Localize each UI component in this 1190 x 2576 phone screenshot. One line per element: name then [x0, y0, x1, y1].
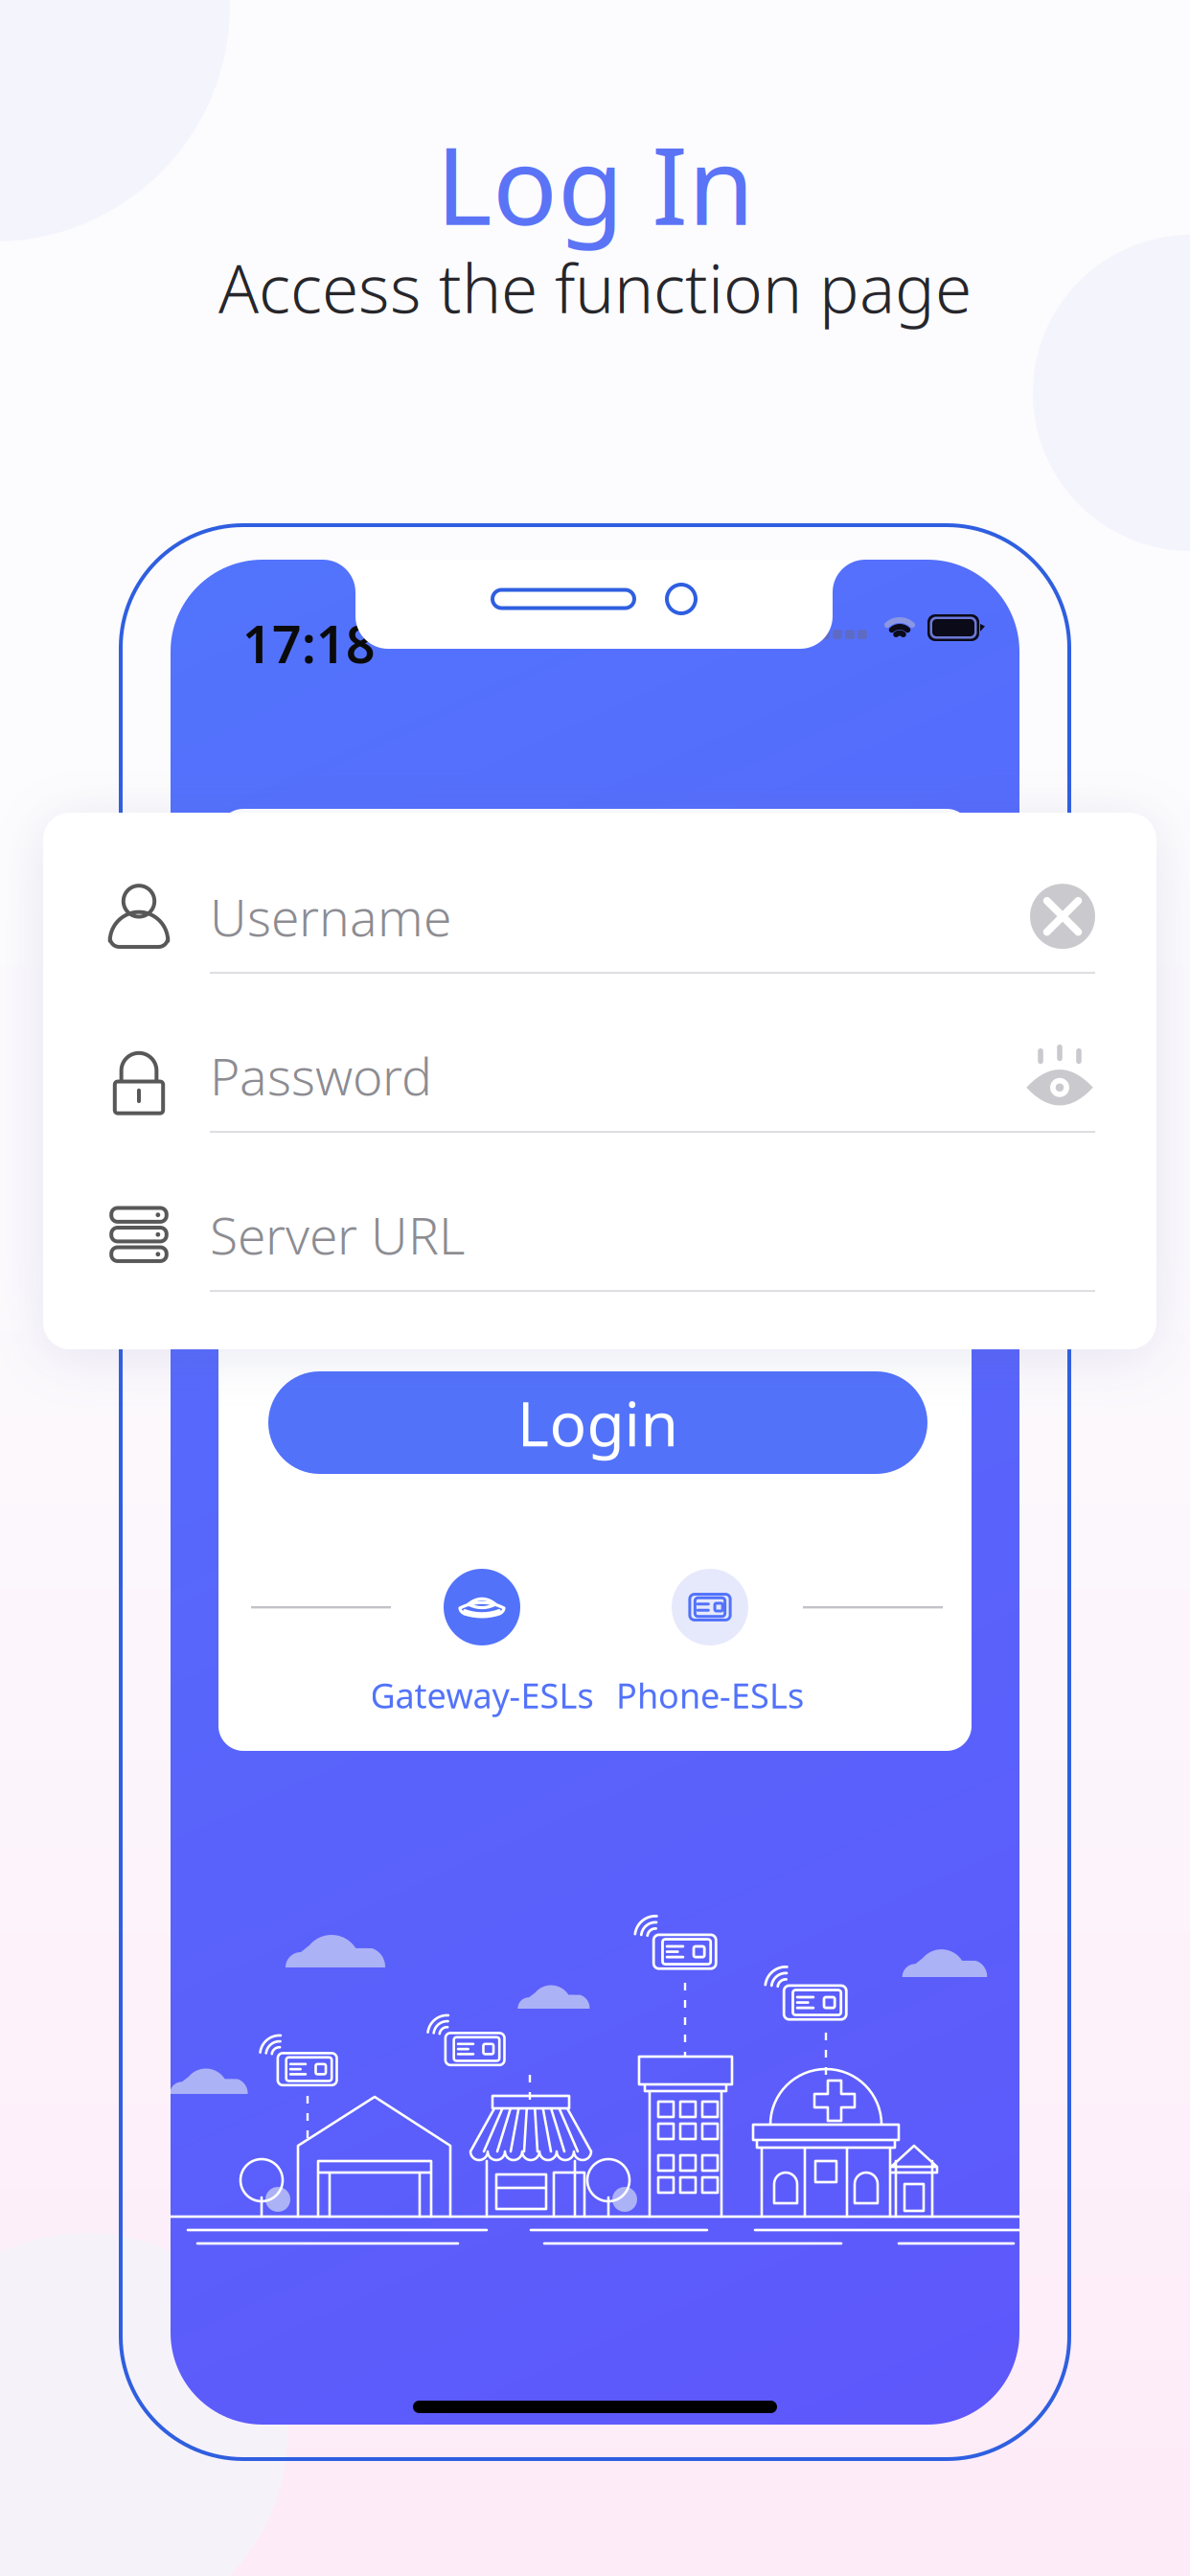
- staticText: Log In: [436, 112, 754, 255]
- staticText: Gateway-ESLs: [370, 1672, 594, 1718]
- button[interactable]: Show password: [1024, 1040, 1095, 1111]
- button[interactable]: Login: [268, 1371, 927, 1474]
- staticText: Login: [517, 1382, 679, 1463]
- staticText: Access the function page: [218, 243, 972, 331]
- staticText: Password: [210, 1042, 432, 1109]
- staticText: Phone-ESLs: [616, 1672, 804, 1718]
- button[interactable]: Phone-ESLs: [616, 1569, 804, 1718]
- button[interactable]: Clear username: [1030, 884, 1095, 949]
- button[interactable]: Gateway-ESLs: [370, 1569, 594, 1718]
- staticText: Username: [210, 882, 451, 950]
- staticText: Server URL: [210, 1201, 465, 1268]
- staticText: 17:18: [242, 609, 376, 677]
